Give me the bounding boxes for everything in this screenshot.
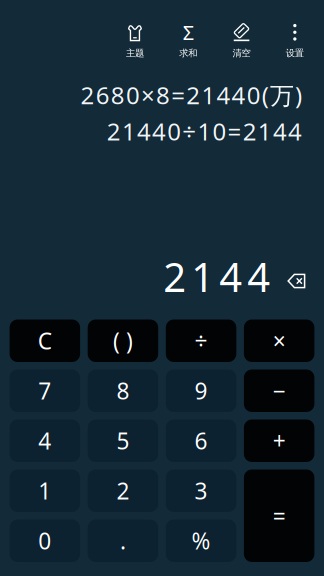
staticText: 3	[194, 476, 207, 506]
staticText: .	[120, 526, 126, 556]
staticText: 2	[116, 476, 129, 506]
staticText: 清空	[232, 47, 250, 59]
staticText: 1	[38, 476, 51, 506]
button[interactable]: Σ	[162, 24, 215, 58]
button[interactable]: 6	[166, 419, 236, 462]
button[interactable]: .	[88, 519, 158, 562]
staticText: 2680×8=21440(万)	[81, 79, 302, 111]
button[interactable]: =	[244, 469, 314, 562]
staticText: 7	[38, 376, 51, 406]
staticText: 设置	[286, 47, 304, 59]
button[interactable]: ×	[244, 319, 314, 362]
button[interactable]: 8	[88, 369, 158, 412]
button[interactable]: 设置	[268, 24, 321, 58]
staticText: −	[273, 376, 286, 406]
staticText: 4	[38, 426, 51, 456]
staticText: +	[273, 426, 286, 456]
button[interactable]: 0	[10, 519, 80, 562]
button[interactable]: Backspace	[287, 273, 305, 288]
staticText: ÷	[194, 326, 207, 356]
button[interactable]: %	[166, 519, 236, 562]
staticText: 2144	[163, 250, 270, 303]
staticText: 6	[194, 426, 207, 456]
staticText: Σ	[183, 19, 194, 46]
button[interactable]: 清空	[215, 24, 268, 58]
staticText: 21440÷10=2144	[107, 115, 302, 147]
button[interactable]: −	[244, 369, 314, 412]
button[interactable]: 7	[10, 369, 80, 412]
staticText: 5	[116, 426, 129, 456]
staticText: ( )	[113, 326, 133, 356]
staticText: 8	[116, 376, 129, 406]
staticText: 9	[194, 376, 207, 406]
staticText: 主题	[126, 47, 144, 59]
staticText: %	[191, 526, 210, 556]
button[interactable]: 3	[166, 469, 236, 512]
staticText: 求和	[179, 47, 197, 59]
staticText: ×	[273, 326, 286, 356]
staticText: C	[38, 326, 52, 356]
button[interactable]: 9	[166, 369, 236, 412]
button[interactable]: 5	[88, 419, 158, 462]
button[interactable]: 主题	[108, 24, 162, 58]
staticText: 0	[38, 526, 51, 556]
staticText: =	[273, 501, 286, 531]
button[interactable]: +	[244, 419, 314, 462]
button[interactable]: ( )	[88, 319, 158, 362]
button[interactable]: 1	[10, 469, 80, 512]
button[interactable]: 2	[88, 469, 158, 512]
button[interactable]: C	[10, 319, 80, 362]
button[interactable]: 4	[10, 419, 80, 462]
button[interactable]: ÷	[166, 319, 236, 362]
